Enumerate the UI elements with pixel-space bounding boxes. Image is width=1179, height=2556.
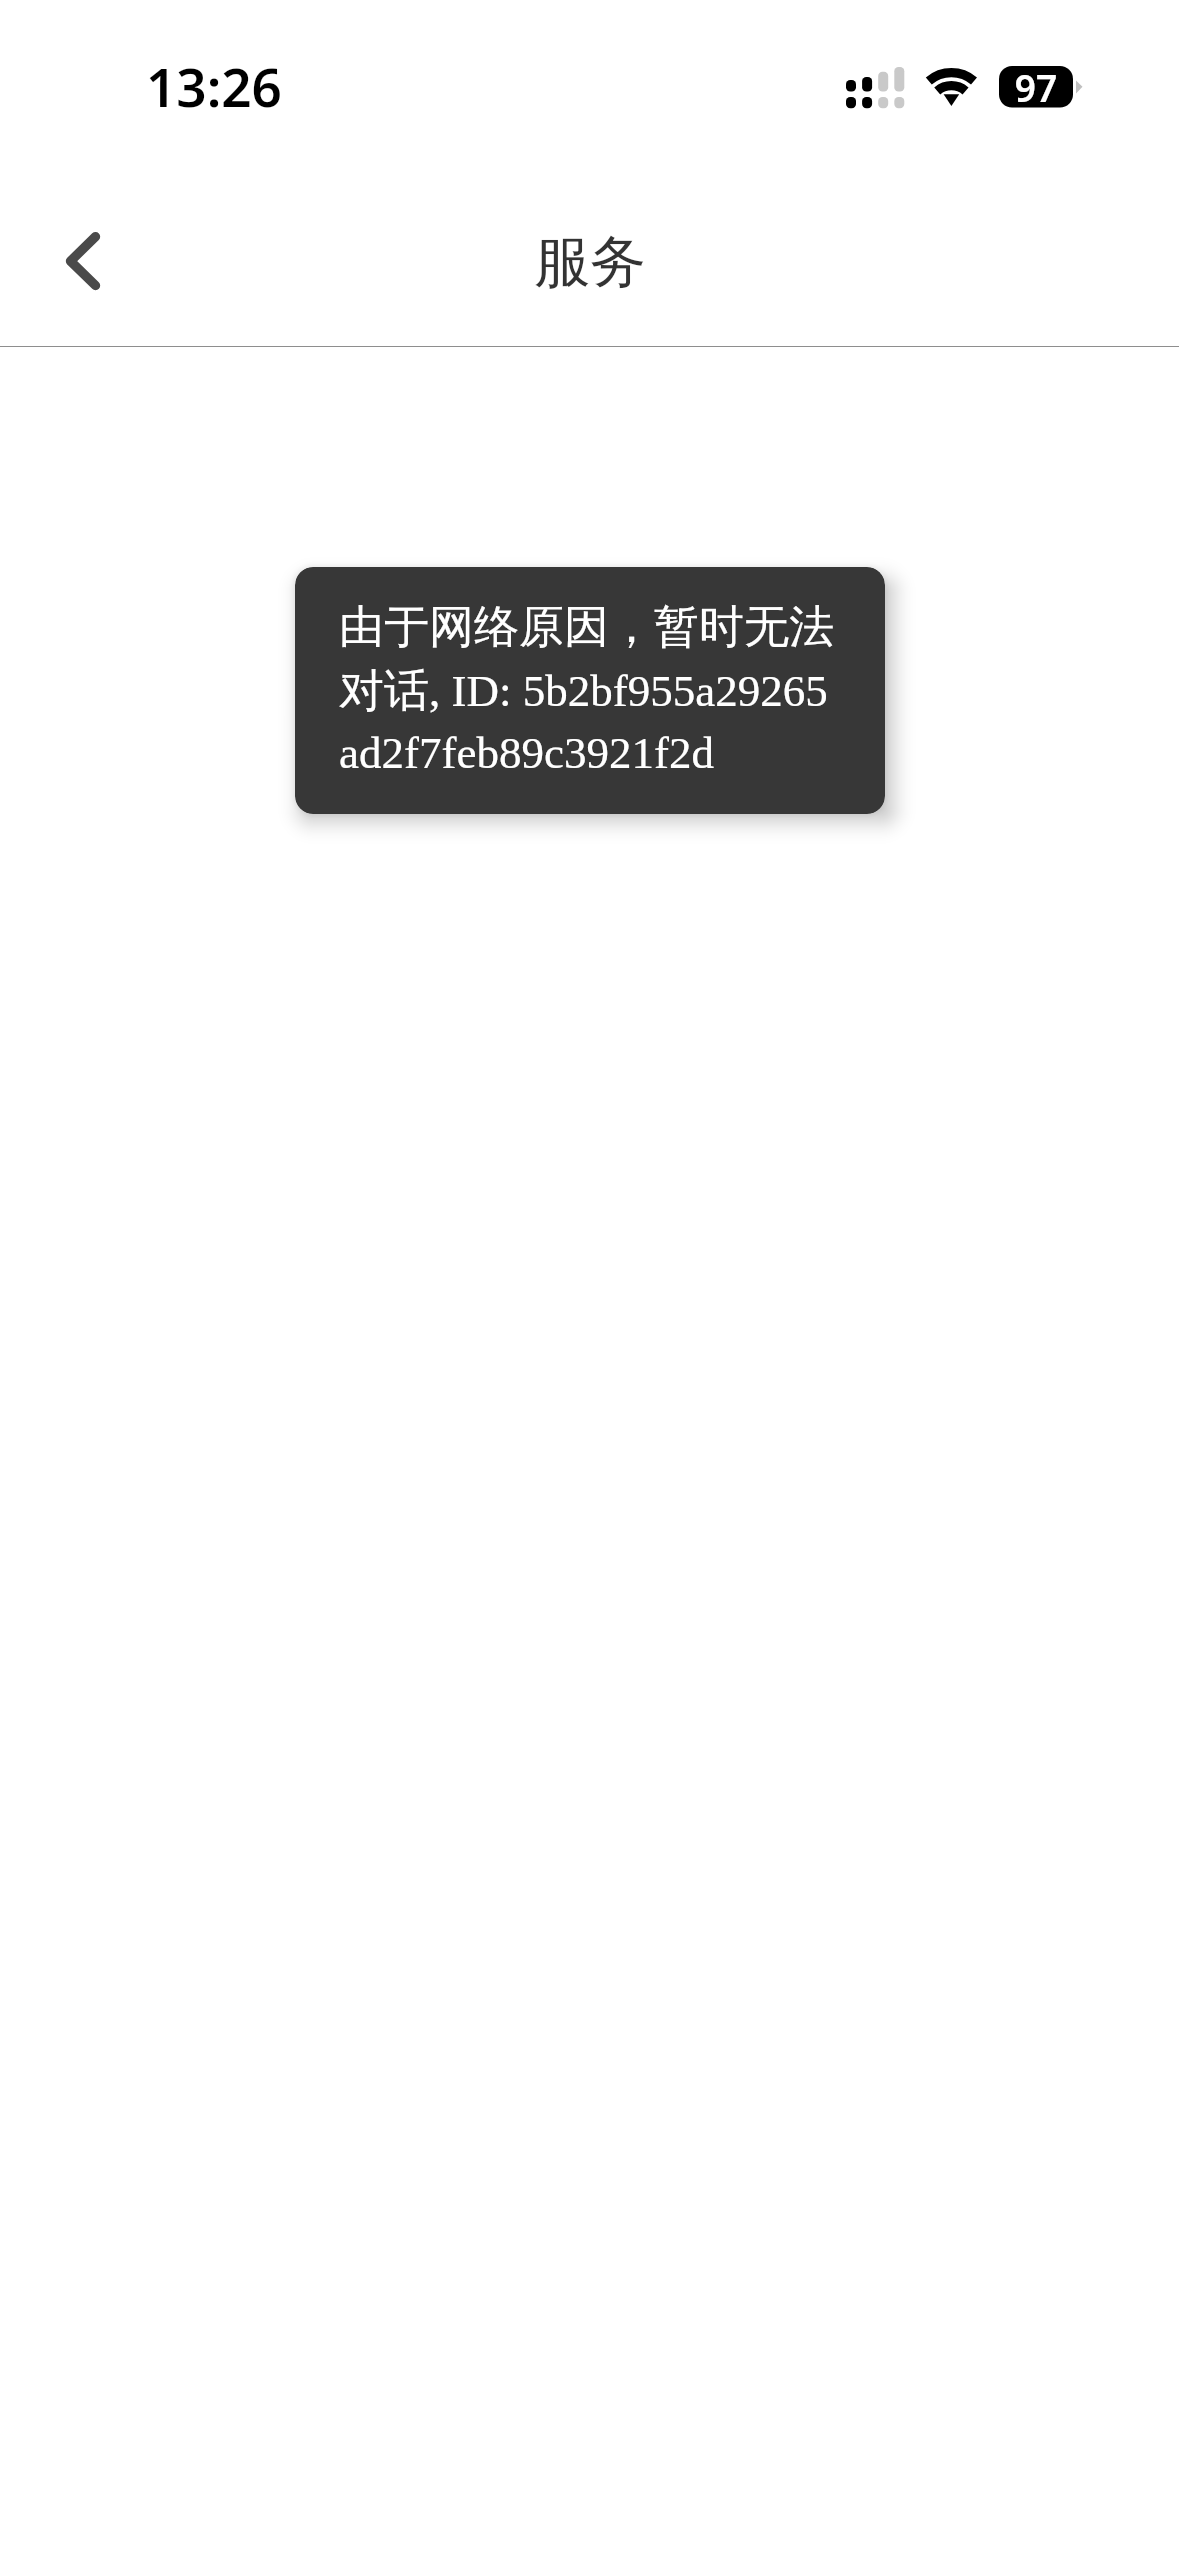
staticText: 13:26 (146, 50, 282, 122)
staticText: 由于网络原因，暂时无法 (339, 599, 834, 656)
staticText: 对话, ID: 5b2bf955a29265 (339, 663, 828, 720)
staticText: 服务 (534, 227, 646, 298)
button[interactable]: 由于网络原因，暂时无法对话 (295, 567, 885, 814)
button[interactable]: Back (22, 210, 118, 306)
staticText: 97 (999, 62, 1073, 103)
staticText: ad2f7feb89c3921f2d (339, 728, 714, 778)
